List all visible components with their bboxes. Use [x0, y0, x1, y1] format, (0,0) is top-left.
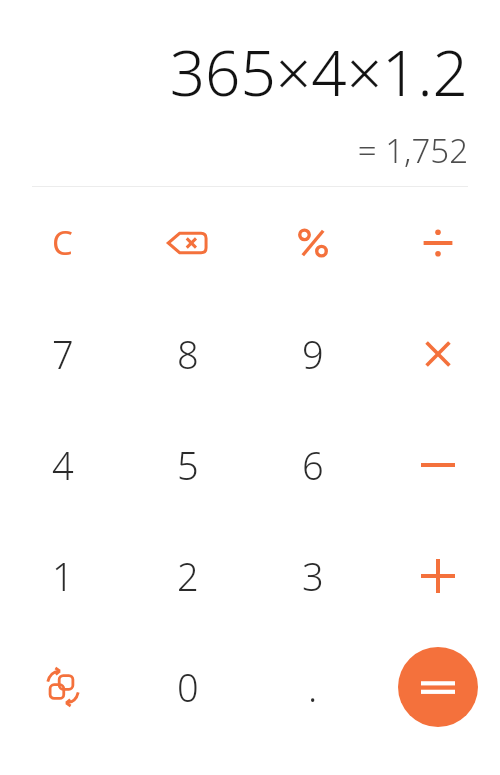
button[interactable]: 5 [125, 409, 250, 520]
staticText: 0 [177, 661, 199, 713]
button[interactable]: 1 [0, 520, 125, 631]
staticText: 8 [177, 328, 199, 380]
button[interactable]: 7 [0, 298, 125, 409]
staticText: 5 [177, 439, 199, 491]
button[interactable]: Equals [398, 647, 478, 727]
button[interactable]: Percent [250, 187, 375, 298]
button[interactable]: 6 [250, 409, 375, 520]
staticText: 9 [302, 328, 324, 380]
staticText: 2 [177, 550, 199, 602]
button[interactable]: 9 [250, 298, 375, 409]
button[interactable]: 8 [125, 298, 250, 409]
button[interactable]: Clear [0, 187, 125, 298]
button[interactable]: Unit converter [0, 631, 125, 742]
button[interactable]: 2 [125, 520, 250, 631]
button[interactable]: Plus [375, 520, 500, 631]
staticText: 7 [52, 328, 74, 380]
staticText: 365×4×1.2 [169, 30, 468, 114]
staticText: 3 [302, 550, 324, 602]
staticText: 4 [52, 439, 74, 491]
button[interactable]: Backspace [125, 187, 250, 298]
button[interactable]: Divide [375, 187, 500, 298]
button[interactable]: Minus [375, 409, 500, 520]
staticText: . [308, 661, 318, 713]
button[interactable]: . [250, 631, 375, 742]
button[interactable]: Multiply [375, 298, 500, 409]
staticText: 1 [52, 550, 74, 602]
staticText: = 1,752 [357, 128, 468, 173]
button[interactable]: 3 [250, 520, 375, 631]
button[interactable]: 4 [0, 409, 125, 520]
button[interactable]: 0 [125, 631, 250, 742]
staticText: C [52, 220, 73, 265]
staticText: 6 [302, 439, 324, 491]
